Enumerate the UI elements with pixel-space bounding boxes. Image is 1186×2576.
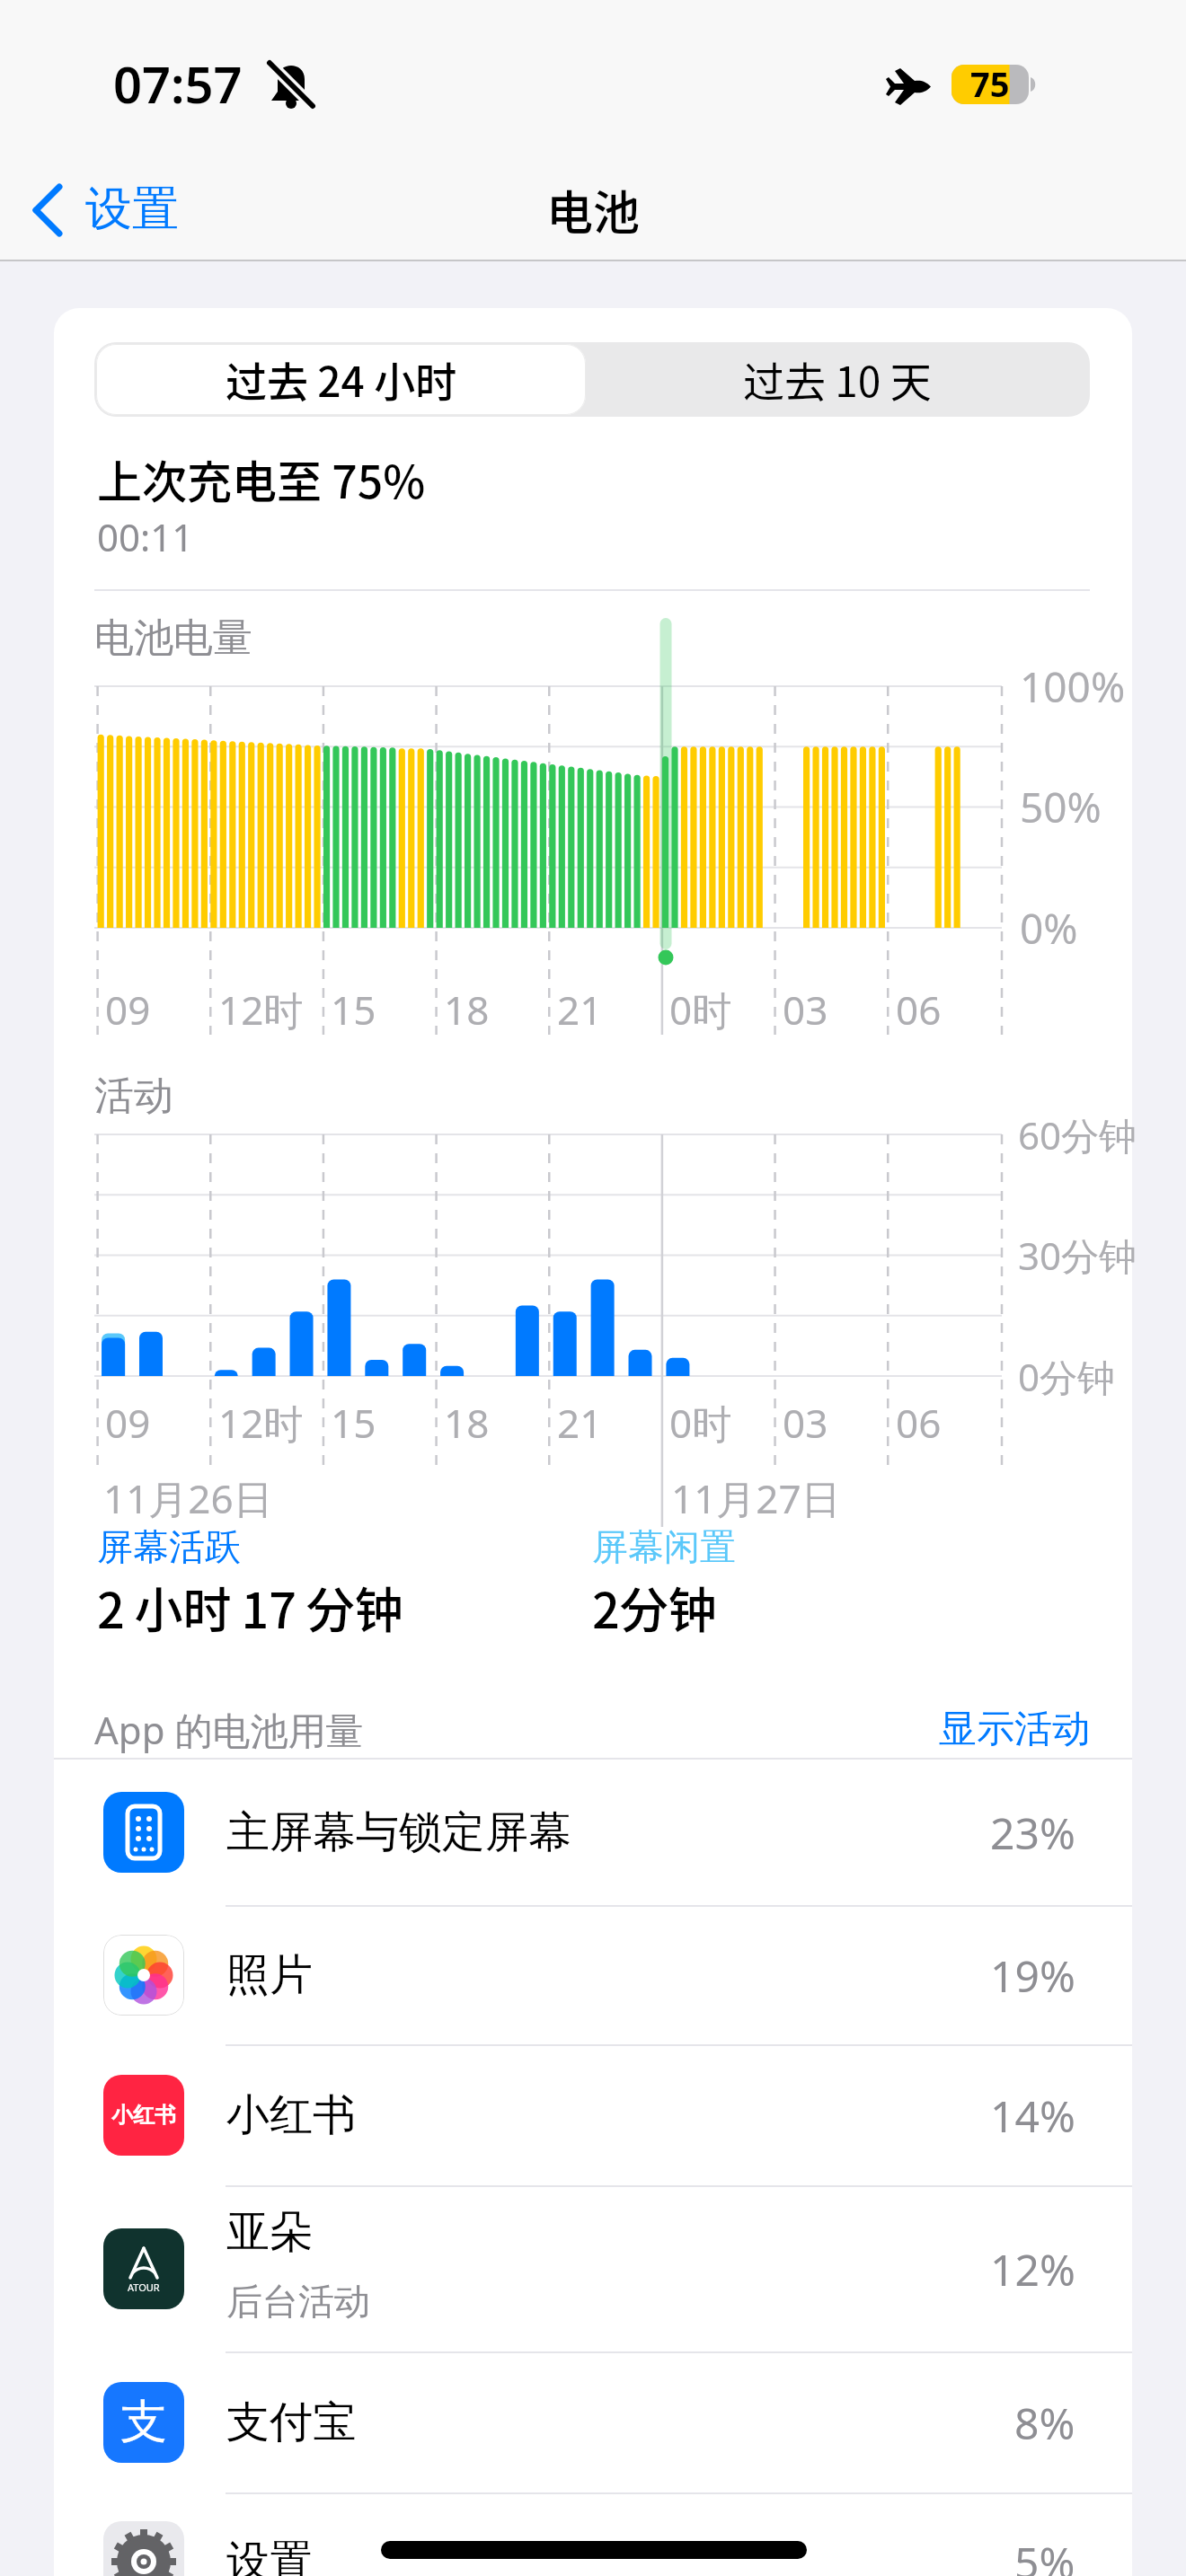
staticText: 12时 [218, 1396, 304, 1450]
staticText: 19% [990, 1946, 1075, 2005]
staticText: 11月26日 [103, 1471, 273, 1525]
staticText: 后台活动 [226, 2279, 370, 2324]
staticText: 14% [990, 2086, 1075, 2145]
button[interactable] [54, 2493, 1132, 2576]
staticText: ATOUR [128, 2280, 160, 2294]
staticText: 21 [557, 983, 603, 1037]
staticText: 12% [990, 2240, 1075, 2298]
staticText: 0分钟 [1018, 1351, 1116, 1402]
staticText: 0% [1020, 900, 1078, 957]
staticText: 09 [105, 1396, 151, 1450]
staticText: 照片 [226, 1948, 313, 2002]
staticText: 15 [331, 983, 376, 1037]
staticText: 60分钟 [1018, 1109, 1137, 1160]
staticText: 23% [990, 1804, 1075, 1862]
staticText: 2分钟 [592, 1572, 717, 1642]
staticText: App 的电池用量 [94, 1704, 364, 1755]
staticText: 11月27日 [671, 1471, 841, 1525]
staticText: 设置 [226, 2535, 313, 2576]
staticText: 30分钟 [1018, 1230, 1137, 1281]
button[interactable] [586, 344, 1090, 415]
staticText: 小红书 [226, 2088, 356, 2142]
staticText: 2 小时 17 分钟 [97, 1572, 403, 1642]
button[interactable] [54, 2352, 1132, 2493]
button[interactable] [54, 2186, 1132, 2352]
staticText: 18 [444, 983, 490, 1037]
staticText: 50% [1020, 779, 1102, 835]
staticText: 06 [896, 1396, 942, 1450]
staticText: 15 [331, 1396, 376, 1450]
staticText: 屏幕活跃 [97, 1524, 241, 1569]
staticText: 屏幕闲置 [592, 1524, 736, 1569]
staticText: 设置 [85, 180, 179, 239]
staticText: 12时 [218, 983, 304, 1037]
staticText: 主屏幕与锁定屏幕 [226, 1805, 571, 1859]
staticText: 75 [970, 60, 1010, 107]
button[interactable]: 显示活动 [820, 1684, 1090, 1774]
staticText: 21 [557, 1396, 603, 1450]
staticText: 0时 [669, 983, 732, 1037]
staticText: 支付宝 [226, 2395, 356, 2449]
staticText: 100% [1020, 658, 1126, 715]
staticText: 活动 [94, 1072, 173, 1121]
staticText: 显示活动 [939, 1706, 1090, 1753]
staticText: 18 [444, 1396, 490, 1450]
staticText: 03 [783, 1396, 828, 1450]
staticText: 07:57 [113, 49, 243, 118]
staticText: 过去 10 天 [743, 349, 932, 410]
staticText: 03 [783, 983, 828, 1037]
staticText: 电池 [546, 176, 641, 243]
staticText: 过去 24 小时 [226, 349, 457, 410]
staticText: 电池电量 [94, 613, 252, 663]
staticText: 8% [1014, 2394, 1075, 2452]
staticText: 支 [120, 2393, 167, 2452]
staticText: 0时 [669, 1396, 732, 1450]
staticText: 00:11 [97, 511, 194, 562]
staticText: 06 [896, 983, 942, 1037]
button[interactable] [54, 1759, 1132, 1906]
staticText: 09 [105, 983, 151, 1037]
button[interactable] [54, 1906, 1132, 2045]
button[interactable] [27, 166, 207, 251]
button[interactable] [96, 344, 586, 415]
staticText: 5% [1014, 2533, 1075, 2576]
button[interactable] [54, 2045, 1132, 2186]
staticText: 上次充电至 75% [97, 446, 426, 511]
staticText: 小红书 [111, 2102, 176, 2129]
staticText: 亚朵 [226, 2205, 313, 2259]
